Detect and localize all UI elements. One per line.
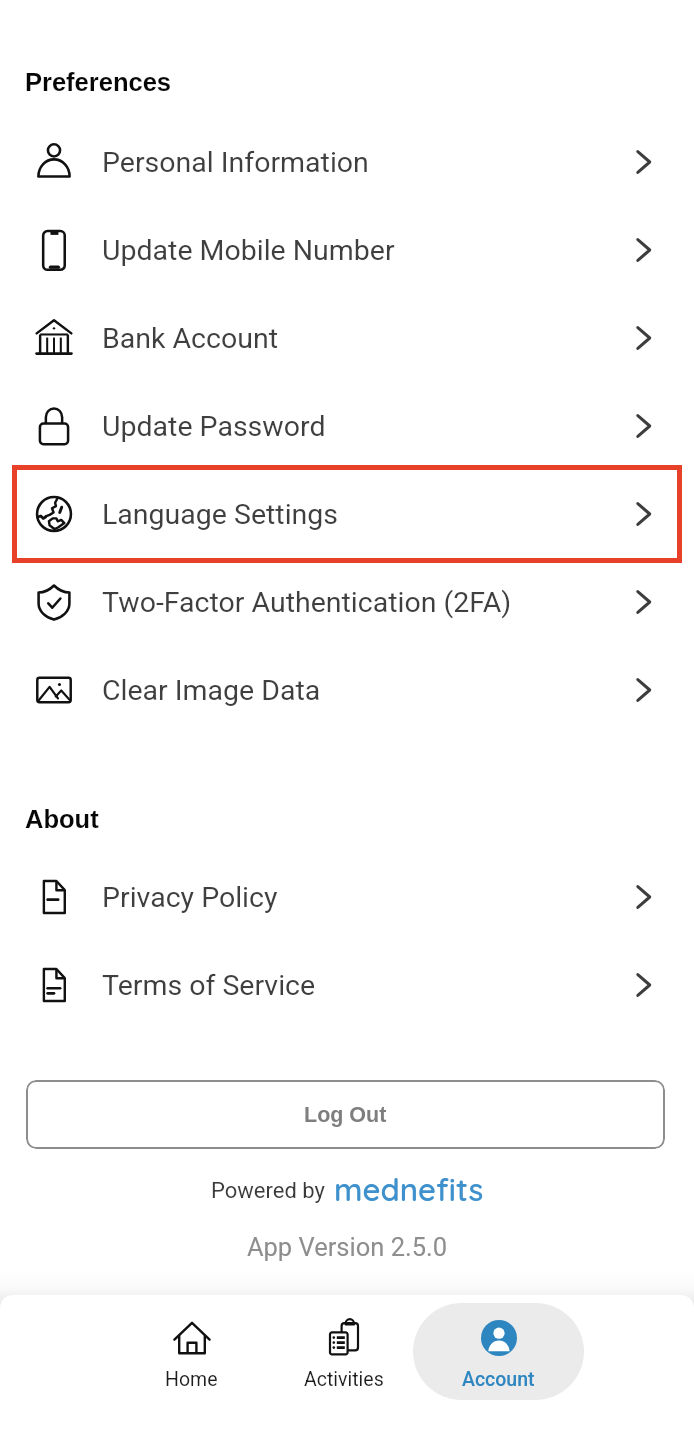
staticText: Preferences: [25, 68, 172, 96]
staticText: Privacy Policy: [102, 881, 278, 914]
button[interactable]: Two-Factor Authentication (2FA): [0, 558, 694, 646]
staticText: Activities: [304, 1368, 384, 1391]
button[interactable]: Account: [462, 1318, 535, 1391]
button[interactable]: Privacy Policy: [0, 853, 694, 941]
button[interactable]: Update Password: [0, 382, 694, 470]
staticText: Update Mobile Number: [102, 234, 395, 267]
staticText: Update Password: [102, 410, 326, 443]
staticText: App Version 2.5.0: [0, 1232, 694, 1262]
button[interactable]: Personal Information: [0, 118, 694, 206]
button[interactable]: Bank Account: [0, 294, 694, 382]
button[interactable]: Clear Image Data: [0, 646, 694, 734]
staticText: About: [25, 805, 99, 833]
staticText: Powered by: [211, 1178, 325, 1204]
staticText: Personal Information: [102, 146, 369, 179]
button[interactable]: Language Settings: [12, 465, 682, 563]
staticText: Two-Factor Authentication (2FA): [102, 586, 512, 619]
staticText: Clear Image Data: [102, 674, 321, 707]
staticText: Account: [462, 1368, 535, 1391]
staticText: Log Out: [304, 1103, 387, 1127]
button[interactable]: Log Out: [26, 1080, 665, 1149]
staticText: mednefits: [334, 1170, 484, 1209]
button[interactable]: Activities: [304, 1318, 384, 1391]
button[interactable]: Terms of Service: [0, 941, 694, 1029]
staticText: Terms of Service: [102, 969, 316, 1002]
staticText: Language Settings: [102, 498, 339, 531]
button[interactable]: Home: [165, 1318, 218, 1391]
button[interactable]: Update Mobile Number: [0, 206, 694, 294]
staticText: Home: [165, 1368, 218, 1391]
staticText: Bank Account: [102, 322, 278, 355]
